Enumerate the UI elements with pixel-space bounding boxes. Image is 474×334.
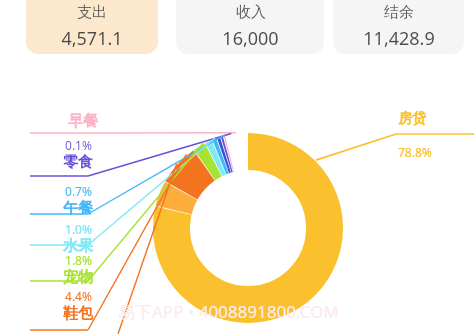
staticText: 0.7% xyxy=(65,183,92,199)
button[interactable]: 支出 xyxy=(26,0,158,54)
staticText: 1.8% xyxy=(65,252,92,268)
button[interactable]: 结余 xyxy=(333,0,464,54)
staticText: 易下APP • 4008891800.COM xyxy=(118,300,339,323)
staticText: 4,571.1 xyxy=(61,26,123,51)
staticText: 宠物 xyxy=(63,268,93,287)
staticText: 支出 xyxy=(77,3,107,22)
staticText: 水果 xyxy=(63,237,93,256)
staticText: 房贷 xyxy=(398,110,426,128)
staticText: 早餐 xyxy=(68,112,98,131)
staticText: 结余 xyxy=(384,3,414,22)
staticText: 1.0% xyxy=(65,221,92,237)
staticText: 11,428.9 xyxy=(363,26,435,51)
staticText: 0.1% xyxy=(65,137,92,153)
button[interactable]: 早餐 xyxy=(52,112,114,131)
staticText: 零食 xyxy=(63,153,93,172)
button[interactable]: 0.1% xyxy=(47,137,109,172)
staticText: 78.8% xyxy=(398,144,432,160)
staticText: 收入 xyxy=(236,3,266,22)
staticText: 鞋包 xyxy=(63,304,93,323)
button[interactable]: 收入 xyxy=(176,0,324,54)
staticText: 4.4% xyxy=(65,288,92,304)
button[interactable]: 0.7% xyxy=(47,183,109,218)
button[interactable]: 1.8% xyxy=(47,252,109,287)
staticText: 16,000 xyxy=(222,26,279,51)
button[interactable]: 1.0% xyxy=(47,221,109,256)
button[interactable]: 4.4% xyxy=(47,288,109,323)
staticText: 午餐 xyxy=(63,199,93,218)
